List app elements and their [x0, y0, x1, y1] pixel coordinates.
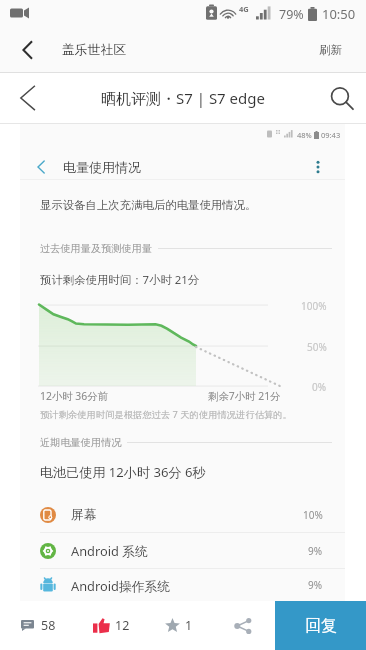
button[interactable]: 回复 — [275, 601, 366, 650]
staticText: 0% — [312, 380, 327, 394]
staticText: 1 — [185, 617, 193, 634]
button[interactable]: 屏幕 — [20, 497, 345, 532]
button[interactable]: 刷新 — [305, 28, 366, 72]
button[interactable]: Back — [13, 36, 41, 64]
staticText: 显示设备自上次充满电后的电量使用情况。 — [40, 198, 257, 212]
staticText: 预计剩余使用时间：7小时 21分 — [40, 272, 200, 288]
staticText: 100% — [301, 299, 327, 313]
staticText: 近期电量使用情况 — [40, 436, 122, 449]
staticText: 12小时 36分前 — [40, 389, 109, 403]
staticText: 09:43 — [321, 130, 341, 140]
button[interactable]: 1 — [146, 601, 210, 650]
staticText: 晒机评测・S7 | S7 edge — [101, 88, 265, 108]
button[interactable]: Android 系统 — [20, 533, 345, 568]
staticText: Android 系统 — [71, 542, 148, 559]
staticText: 过去使用量及预测使用量 — [40, 242, 153, 255]
button[interactable]: 12 — [76, 601, 146, 650]
staticText: 79% — [279, 6, 304, 23]
staticText: 10:50 — [322, 5, 356, 23]
staticText: Android操作系统 — [71, 577, 171, 594]
button[interactable]: More options — [304, 153, 332, 181]
staticText: 预计剩余使用时间是根据您过去 7 天的使用情况进行估算的。 — [40, 408, 292, 421]
staticText: 电池已使用 12小时 36分 6秒 — [40, 463, 206, 481]
staticText: 10% — [303, 508, 323, 522]
staticText: 50% — [307, 340, 327, 354]
staticText: 屏幕 — [71, 507, 97, 523]
staticText: 4G — [239, 4, 249, 14]
staticText: 剩余7小时 21分 — [208, 389, 281, 403]
button[interactable]: Android操作系统 — [20, 569, 345, 601]
staticText: 58 — [41, 617, 56, 634]
button[interactable]: Share — [210, 601, 275, 650]
staticText: 电量使用情况 — [63, 159, 141, 175]
staticText: 盖乐世社区 — [62, 42, 126, 58]
staticText: 刷新 — [319, 43, 342, 57]
staticText: 回复 — [305, 616, 337, 636]
button[interactable]: Back — [32, 158, 50, 176]
button[interactable]: Search — [316, 73, 366, 123]
button[interactable]: 58 — [0, 601, 76, 650]
button[interactable]: Back — [13, 84, 41, 112]
staticText: 9% — [308, 578, 323, 592]
staticText: 9% — [308, 544, 323, 558]
staticText: 12 — [115, 617, 130, 634]
staticText: 48% — [297, 130, 312, 140]
